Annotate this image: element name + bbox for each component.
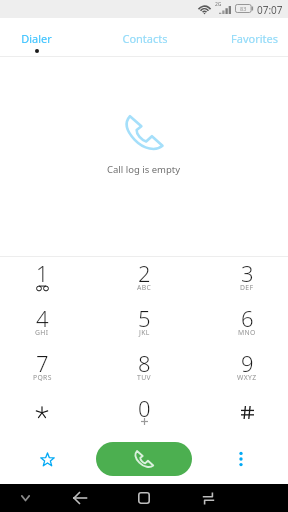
button[interactable]: Hide keyboard <box>2 484 48 512</box>
staticText: 6 <box>241 303 254 331</box>
staticText: 07:07 <box>257 3 283 17</box>
button[interactable]: Home <box>121 484 167 512</box>
staticText: JKL <box>139 328 150 337</box>
staticText: MNO <box>238 328 256 337</box>
staticText: GHI <box>35 328 49 337</box>
staticText: 2 <box>138 258 151 286</box>
staticText: 3 <box>241 258 254 286</box>
button[interactable]: Favorites <box>25 437 69 481</box>
button[interactable]: pound <box>201 390 288 435</box>
staticText: DEF <box>240 283 254 292</box>
button[interactable]: 6 MNO <box>201 300 288 345</box>
button[interactable]: 2 ABC <box>98 255 190 300</box>
staticText: 8 <box>138 348 151 376</box>
staticText: WXYZ <box>237 373 257 382</box>
button[interactable]: 0 + <box>98 390 190 435</box>
button[interactable]: 1 voicemail <box>0 255 88 300</box>
staticText: 0 <box>138 393 151 421</box>
staticText: Contacts <box>122 31 168 46</box>
button[interactable]: 9 WXYZ <box>201 345 288 390</box>
button[interactable]: star <box>0 390 88 435</box>
button[interactable]: Contacts <box>99 18 191 56</box>
button[interactable]: Favorites <box>208 18 288 56</box>
button[interactable]: 5 JKL <box>98 300 190 345</box>
button[interactable]: 4 GHI <box>0 300 88 345</box>
button[interactable]: Call <box>96 442 192 476</box>
button[interactable]: Recent apps <box>185 484 231 512</box>
staticText: 9 <box>241 348 254 376</box>
staticText: ABC <box>137 283 152 292</box>
staticText: TUV <box>137 373 151 382</box>
button[interactable]: Back <box>57 484 103 512</box>
button[interactable]: Dialer <box>0 18 82 56</box>
staticText: Dialer <box>21 31 52 46</box>
button[interactable]: 8 TUV <box>98 345 190 390</box>
button[interactable]: 3 DEF <box>201 255 288 300</box>
staticText: Favorites <box>231 31 278 46</box>
staticText: 4 <box>36 303 49 331</box>
staticText: 83 <box>240 5 247 12</box>
staticText: Call log is empty <box>107 163 181 176</box>
staticText: 1 <box>36 258 49 286</box>
staticText: PQRS <box>33 373 52 382</box>
button[interactable]: 7 PQRS <box>0 345 88 390</box>
staticText: 7 <box>36 348 49 376</box>
staticText: 2G <box>215 1 222 8</box>
staticText: 5 <box>138 303 151 331</box>
button[interactable]: More options <box>219 437 263 481</box>
